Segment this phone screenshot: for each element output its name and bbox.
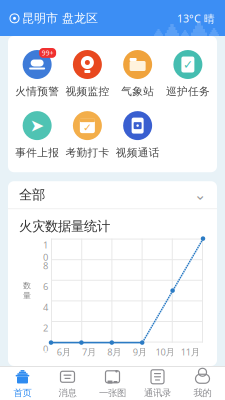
staticText: 我的 xyxy=(193,387,211,399)
staticText: 巡护任务 xyxy=(166,85,210,98)
staticText: 全部 xyxy=(19,186,45,203)
button[interactable]: 消息 xyxy=(45,363,90,400)
staticText: 10 xyxy=(43,239,48,263)
staticText: 昆明市 盘龙区 xyxy=(22,11,98,26)
staticText: 13°C 晴 xyxy=(177,11,215,25)
staticText: ➤ xyxy=(30,116,45,135)
staticText: 0 xyxy=(43,343,48,355)
staticText: 考勤打卡 xyxy=(65,146,109,159)
button[interactable]: ➤ xyxy=(15,110,59,159)
staticText: 首页 xyxy=(13,387,31,399)
button[interactable]: ✓ xyxy=(65,110,109,159)
staticText: ⌄ xyxy=(194,186,206,203)
staticText: 8月 xyxy=(107,346,121,358)
staticText: 99+ xyxy=(42,48,54,57)
staticText: 6月 xyxy=(57,346,71,358)
staticText: 数量 xyxy=(23,281,31,300)
staticText: 6 xyxy=(43,280,48,293)
staticText: 事件上报 xyxy=(15,146,59,159)
staticText: ✓ xyxy=(83,121,92,134)
staticText: 火情预警 xyxy=(15,85,59,98)
staticText: 8 xyxy=(43,259,48,272)
staticText: 7月 xyxy=(82,346,96,358)
button[interactable]: 视频监控 xyxy=(65,49,109,98)
staticText: 2 xyxy=(43,322,48,334)
staticText: 一张图 xyxy=(99,387,126,399)
staticText: 9月 xyxy=(133,346,147,358)
staticText: 10月 xyxy=(155,346,174,358)
button[interactable]: 首页 xyxy=(0,363,45,400)
button[interactable]: 气象站 xyxy=(119,49,157,98)
staticText: 11月 xyxy=(181,346,200,358)
staticText: 火灾数据量统计 xyxy=(19,218,110,235)
button[interactable]: 全部 xyxy=(8,181,217,208)
button[interactable]: ✓ xyxy=(166,49,210,98)
button[interactable]: 99+ xyxy=(15,49,59,98)
button[interactable]: 我的 xyxy=(180,363,225,400)
staticText: 视频监控 xyxy=(65,85,109,98)
button[interactable]: 通讯录 xyxy=(135,363,180,400)
staticText: 4 xyxy=(43,301,48,313)
button[interactable]: 视频通话 xyxy=(116,110,160,159)
button[interactable]: 昆明市 盘龙区 xyxy=(10,11,98,26)
button[interactable]: 一张图 xyxy=(90,363,135,400)
staticText: 气象站 xyxy=(121,85,154,98)
staticText: 视频通话 xyxy=(116,146,160,159)
staticText: ✓ xyxy=(183,58,193,71)
staticText: 消息 xyxy=(58,387,76,399)
staticText: 通讯录 xyxy=(144,387,171,399)
